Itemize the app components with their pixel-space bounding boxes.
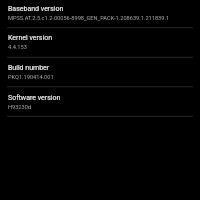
button[interactable]: Kernel version [0,28,200,57]
staticText: Baseband version [8,5,64,13]
staticText: Build number [8,64,50,72]
staticText: MPSS.AT.2.5.c1.2-00056-8998_GEN_PACK-1.2… [8,15,170,22]
staticText: H93230d [8,104,32,111]
button[interactable]: Software version [0,87,200,116]
button[interactable]: Baseband version [0,0,200,27]
staticText: Software version [8,94,61,102]
staticText: 4.4.153 [8,44,27,51]
staticText: PKQ1.190414.001 [8,74,54,81]
staticText: Kernel version [8,34,53,42]
button[interactable]: Build number [0,58,200,86]
